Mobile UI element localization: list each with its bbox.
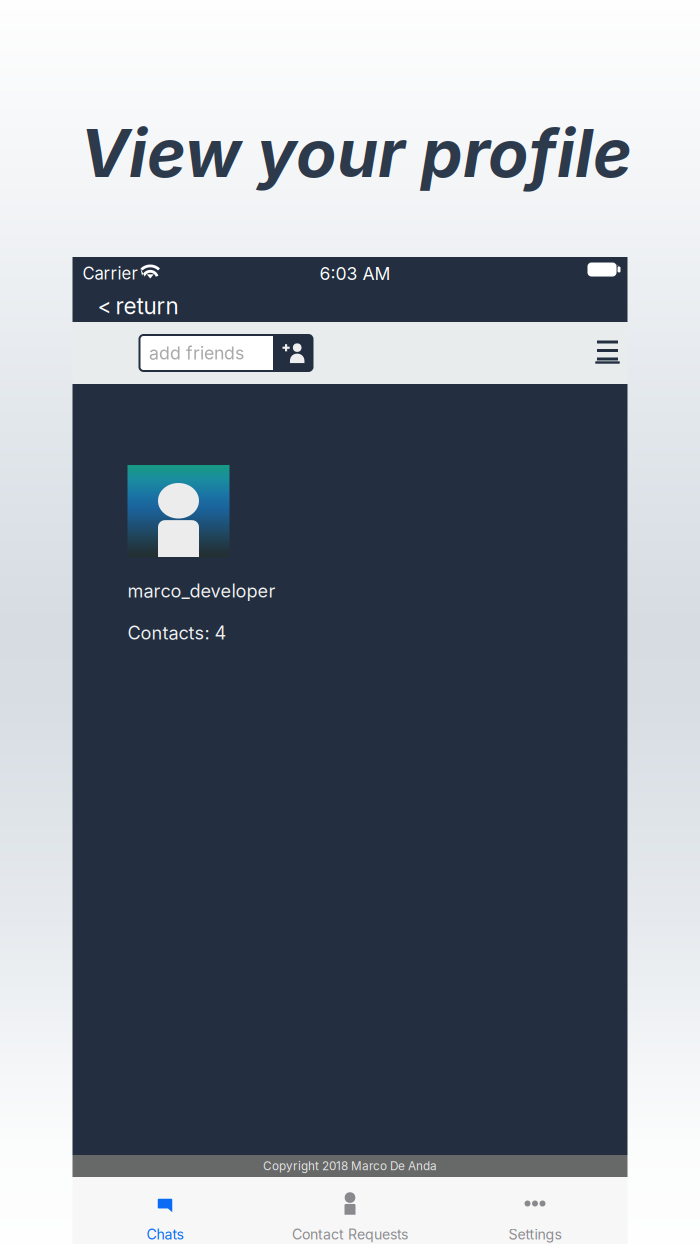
staticText: 6:03 AM [319, 263, 390, 284]
button[interactable]: < [72, 290, 192, 322]
staticText: marco_developer [127, 580, 275, 602]
staticText: Contact Requests [292, 1226, 408, 1243]
staticText: Carrier [82, 263, 137, 284]
button[interactable]: Settings [442, 1177, 627, 1244]
button[interactable]: Add friend [273, 335, 313, 371]
staticText: Chats [146, 1226, 183, 1243]
staticText: Settings [508, 1226, 561, 1243]
staticText: add friends [149, 342, 244, 364]
button[interactable]: Contact Requests [257, 1177, 442, 1244]
button[interactable]: Chats [72, 1177, 257, 1244]
button[interactable]: Menu [587, 330, 627, 376]
staticText: Contacts: 4 [127, 622, 226, 644]
staticText: View your profile [80, 113, 632, 193]
staticText: return [115, 292, 178, 320]
staticText: < [97, 293, 111, 319]
staticText: Copyright 2018 Marco De Anda [263, 1159, 437, 1173]
